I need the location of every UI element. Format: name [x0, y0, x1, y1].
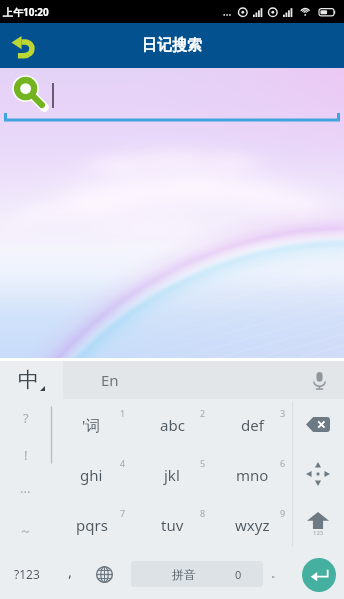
button[interactable]: ?123: [0, 549, 54, 599]
staticText: ?: [23, 409, 29, 427]
staticText: 7: [120, 507, 126, 519]
button[interactable]: 中: [0, 361, 63, 399]
staticText: 拼音: [172, 567, 196, 582]
staticText: 中: [18, 367, 39, 393]
button[interactable]: wxyz: [212, 499, 292, 549]
button[interactable]: 拼音: [131, 561, 263, 587]
button[interactable]: En: [63, 361, 344, 399]
staticText: 3: [280, 407, 286, 419]
button[interactable]: ?: [0, 399, 51, 436]
staticText: 2: [200, 407, 206, 419]
button[interactable]: tuv: [132, 499, 212, 549]
button[interactable]: Enter: [302, 558, 336, 592]
staticText: def: [241, 415, 264, 435]
staticText: wxyz: [235, 515, 270, 535]
staticText: jkl: [164, 465, 180, 485]
button[interactable]: [0, 68, 344, 123]
staticText: ···: [20, 483, 31, 501]
staticText: 上午10:20: [3, 5, 49, 19]
staticText: ,: [68, 561, 73, 581]
staticText: 4: [120, 457, 126, 469]
staticText: tuv: [161, 515, 184, 535]
button[interactable]: Shift 123: [292, 499, 344, 549]
button[interactable]: Voice input: [306, 367, 332, 393]
staticText: 0: [235, 567, 242, 582]
staticText: 。: [271, 567, 281, 580]
button[interactable]: abc: [132, 399, 212, 449]
staticText: !: [24, 446, 28, 464]
staticText: ghi: [80, 465, 103, 485]
staticText: 1: [120, 407, 126, 419]
staticText: 9: [280, 507, 286, 519]
staticText: 8: [200, 507, 206, 519]
button[interactable]: ～: [0, 511, 51, 549]
staticText: abc: [160, 415, 185, 435]
button[interactable]: ,: [54, 549, 86, 599]
staticText: 123: [313, 529, 324, 537]
staticText: 日记搜索: [142, 36, 202, 55]
button[interactable]: '词: [51, 399, 132, 449]
button[interactable]: Change language: [86, 549, 122, 599]
button[interactable]: Backspace: [292, 399, 344, 449]
button[interactable]: !: [0, 436, 51, 473]
button[interactable]: jkl: [132, 449, 212, 499]
staticText: '词: [82, 415, 101, 435]
staticText: ～: [19, 522, 32, 538]
staticText: mno: [236, 465, 269, 485]
staticText: 5: [200, 457, 206, 469]
button[interactable]: mno: [212, 449, 292, 499]
staticText: pqrs: [76, 515, 108, 535]
button[interactable]: Move cursor: [292, 449, 344, 499]
button[interactable]: Back: [0, 24, 44, 68]
button[interactable]: ···: [0, 473, 51, 511]
button[interactable]: def: [212, 399, 292, 449]
button[interactable]: 。: [263, 549, 289, 599]
button[interactable]: ghi: [51, 449, 132, 499]
staticText: 6: [280, 457, 286, 469]
staticText: ?123: [14, 566, 40, 582]
button[interactable]: pqrs: [51, 499, 132, 549]
staticText: En: [101, 370, 119, 390]
